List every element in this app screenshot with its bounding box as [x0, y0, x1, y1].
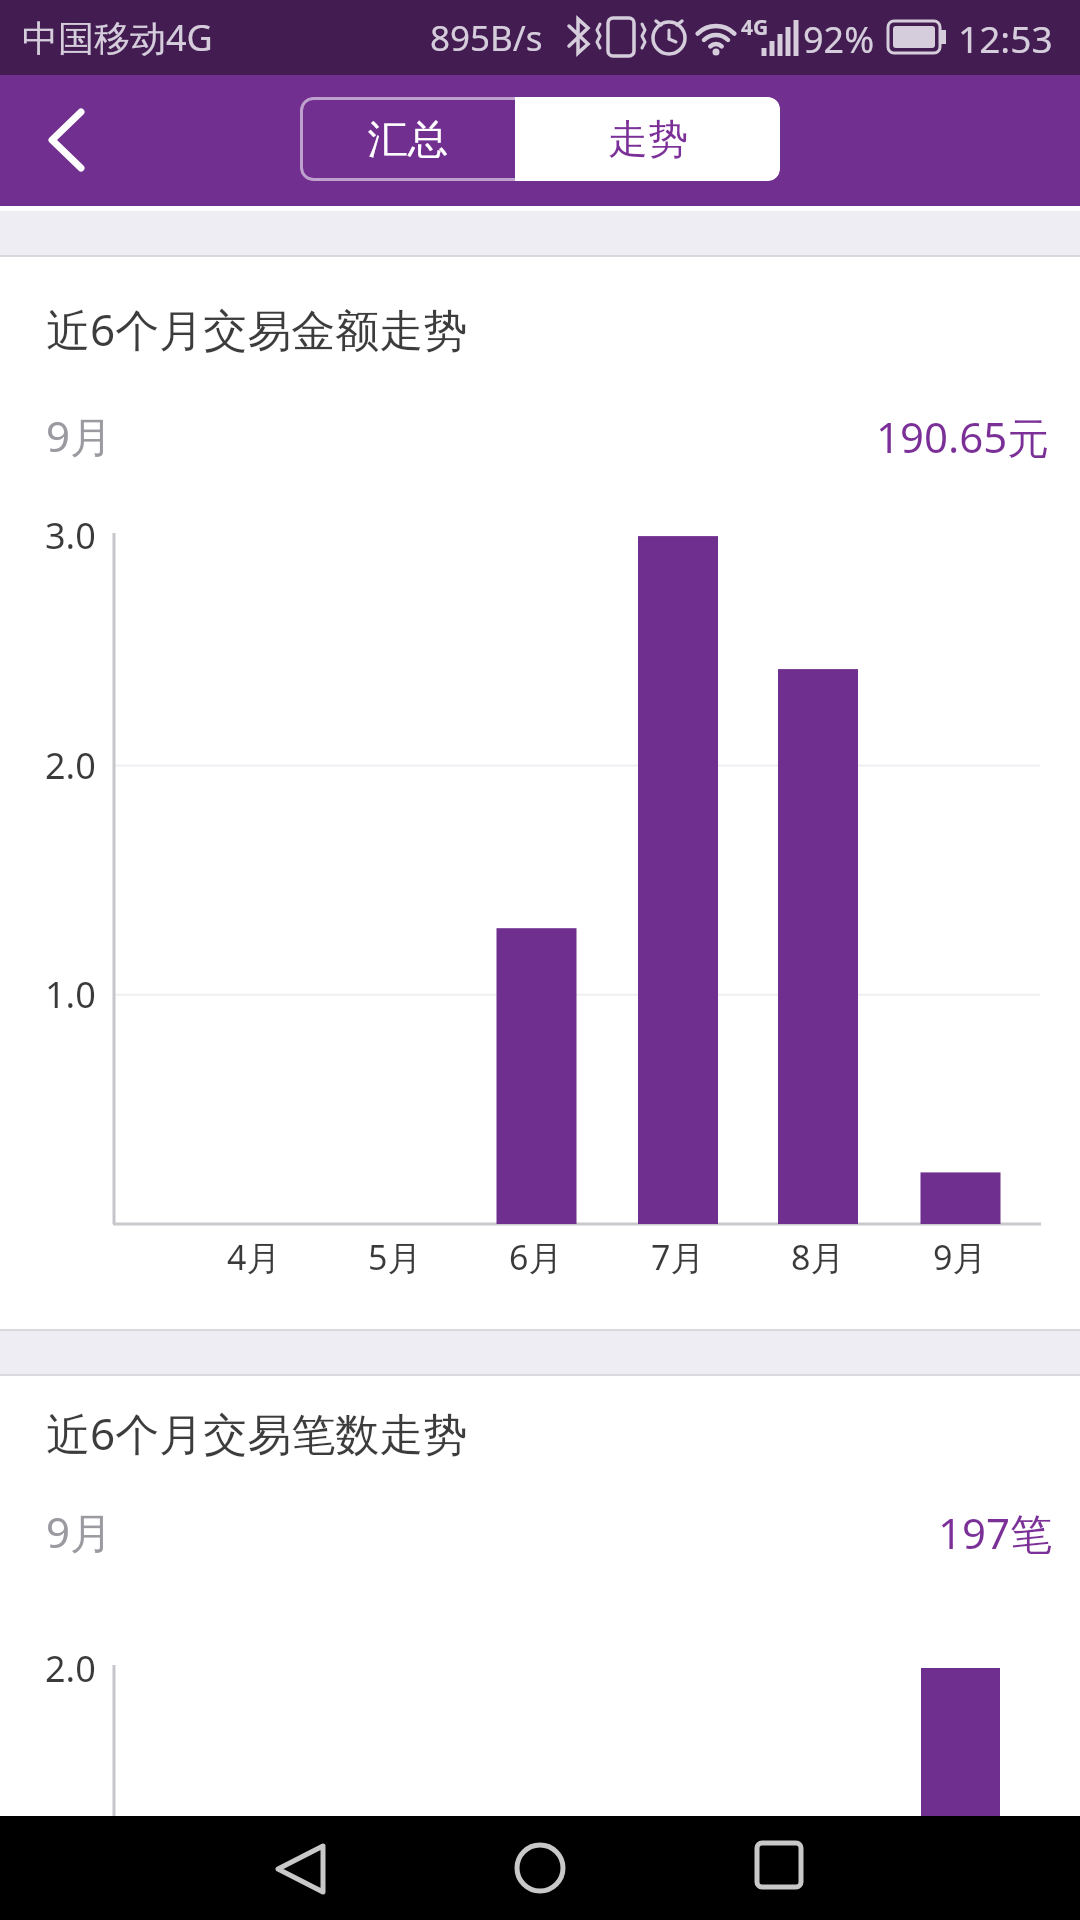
- staticText: 7月: [651, 1234, 705, 1280]
- staticText: 92%: [803, 15, 875, 64]
- staticText: 近6个月交易笔数走势: [46, 1403, 468, 1463]
- staticText: 2.0: [45, 1644, 96, 1693]
- staticText: 6月: [509, 1234, 563, 1280]
- staticText: 汇总: [368, 114, 448, 164]
- staticText: 近6个月交易金额走势: [46, 299, 468, 359]
- staticText: 9月: [933, 1234, 987, 1280]
- staticText: 2.0: [45, 741, 96, 790]
- staticText: 9月: [46, 407, 113, 464]
- staticText: 197笔: [938, 1504, 1053, 1561]
- staticText: 中国移动4G: [22, 13, 213, 62]
- staticText: 9月: [46, 1503, 113, 1560]
- button[interactable]: [250, 1816, 350, 1920]
- staticText: 12:53: [958, 13, 1053, 63]
- staticText: 走势: [608, 114, 688, 164]
- staticText: 8月: [791, 1234, 845, 1280]
- staticText: 4月: [227, 1234, 281, 1280]
- staticText: 3.0: [45, 511, 96, 560]
- button[interactable]: 走势: [515, 97, 780, 181]
- staticText: 190.65元: [876, 408, 1050, 465]
- staticText: 4G: [741, 13, 769, 42]
- staticText: 5月: [368, 1234, 422, 1280]
- button[interactable]: 汇总: [300, 97, 515, 181]
- button[interactable]: [30, 95, 100, 185]
- staticText: 895B/s: [430, 14, 543, 62]
- button[interactable]: [729, 1816, 829, 1920]
- staticText: 1.0: [45, 970, 96, 1019]
- button[interactable]: [490, 1816, 590, 1920]
